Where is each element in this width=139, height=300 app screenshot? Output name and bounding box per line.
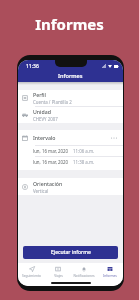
staticText: lun, 16 mar, 2020	[33, 148, 69, 154]
button[interactable]: Perfil	[18, 90, 123, 106]
staticText: 11:36	[26, 63, 39, 70]
button[interactable]: Orientación	[18, 178, 123, 195]
button[interactable]: Viajes	[45, 263, 71, 280]
staticText: Vertical	[33, 188, 49, 194]
staticText: Ejecutar informe	[51, 249, 91, 256]
staticText: Perfil	[33, 91, 46, 98]
staticText: Informes	[0, 14, 139, 34]
staticText: Orientación	[33, 180, 63, 187]
button[interactable]: lun, 16 mar, 2020	[18, 157, 123, 167]
staticText: CHEVY 2007	[33, 116, 58, 122]
staticText: 11:06 a.m.	[73, 148, 95, 154]
staticText: Intervalo	[33, 134, 56, 141]
staticText: lun, 16 mar, 2020	[33, 159, 69, 165]
staticText: 11:38 a.m.	[73, 159, 95, 165]
button[interactable]: Más opciones	[110, 134, 118, 142]
button[interactable]: lun, 16 mar, 2020	[18, 146, 123, 156]
button[interactable]: Informes	[97, 263, 123, 280]
staticText: Seguimiento	[22, 274, 41, 278]
staticText: Informes	[58, 72, 83, 80]
staticText: Unidad	[33, 108, 51, 115]
staticText: Viajes	[54, 274, 63, 278]
button[interactable]: Seguimiento	[18, 263, 45, 280]
button[interactable]: Unidad	[18, 107, 123, 123]
button[interactable]: Intervalo	[18, 130, 123, 145]
staticText: Informes	[103, 274, 117, 278]
button[interactable]: Ejecutar informe	[23, 246, 118, 259]
staticText: Cuenta / Plantilla 2	[33, 99, 72, 105]
button[interactable]: Notificaciones	[71, 263, 97, 280]
staticText: Notificaciones	[73, 274, 95, 278]
other: Inicio	[51, 282, 91, 284]
